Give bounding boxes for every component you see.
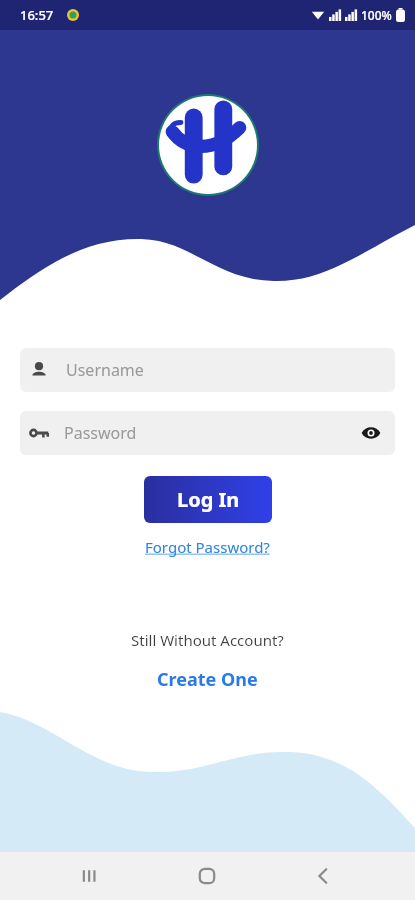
button[interactable]: Show password bbox=[351, 413, 391, 453]
button[interactable]: Username bbox=[20, 348, 395, 392]
staticText: Forgot Password? bbox=[145, 537, 270, 557]
button[interactable]: Home bbox=[183, 852, 231, 900]
button[interactable]: Password bbox=[20, 411, 395, 455]
button[interactable]: Log In bbox=[144, 476, 272, 523]
staticText: Username bbox=[66, 359, 144, 381]
staticText: 16:57 bbox=[20, 6, 54, 24]
button[interactable]: Recent apps bbox=[67, 852, 115, 900]
staticText: Password bbox=[64, 422, 137, 444]
staticText: Still Without Account? bbox=[131, 630, 284, 650]
staticText: Log In bbox=[177, 486, 240, 513]
button[interactable]: Back bbox=[299, 852, 347, 900]
button[interactable]: Create One bbox=[149, 664, 266, 695]
button[interactable]: Forgot Password? bbox=[139, 535, 276, 559]
staticText: 100% bbox=[361, 7, 392, 23]
staticText: Create One bbox=[157, 667, 258, 692]
